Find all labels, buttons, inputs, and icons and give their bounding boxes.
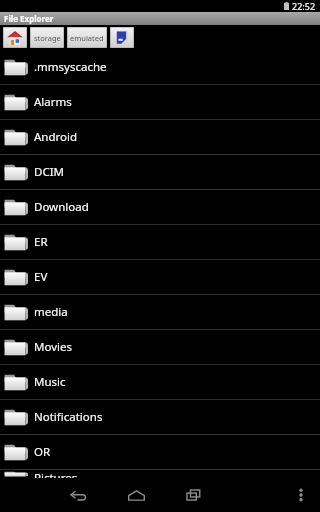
staticText: File Explorer — [4, 13, 54, 24]
staticText: Alarms — [34, 94, 72, 110]
staticText: 22:52 — [292, 0, 316, 12]
staticText: Notifications — [34, 409, 103, 425]
button[interactable]: Home — [116, 478, 156, 512]
button[interactable]: Notifications — [0, 400, 320, 434]
button[interactable]: emulated — [67, 27, 107, 48]
button[interactable]: Pictures — [0, 470, 320, 478]
button[interactable]: DCIM — [0, 155, 320, 189]
staticText: Music — [34, 374, 66, 390]
button[interactable]: Music — [0, 365, 320, 399]
button[interactable]: Back — [58, 478, 98, 512]
button[interactable]: Movies — [0, 330, 320, 364]
button[interactable]: Recents — [174, 478, 214, 512]
button[interactable]: More options — [286, 480, 316, 510]
button[interactable]: .mmsyscache — [0, 50, 320, 84]
button[interactable]: storage — [30, 27, 64, 48]
staticText: storage — [34, 33, 61, 43]
staticText: ER — [34, 234, 48, 250]
button[interactable]: Android — [0, 120, 320, 154]
button[interactable]: EV — [0, 260, 320, 294]
staticText: Android — [34, 129, 78, 145]
staticText: DCIM — [34, 164, 64, 180]
staticText: media — [34, 304, 68, 320]
staticText: .mmsyscache — [34, 59, 107, 75]
staticText: emulated — [70, 33, 104, 43]
button[interactable]: media — [0, 295, 320, 329]
staticText: EV — [34, 269, 48, 285]
button[interactable]: Download — [0, 190, 320, 224]
button[interactable]: Home — [3, 27, 27, 48]
staticText: Download — [34, 199, 89, 215]
button[interactable]: Alarms — [0, 85, 320, 119]
button[interactable]: ER — [0, 225, 320, 259]
button[interactable]: OR — [0, 435, 320, 469]
button[interactable]: Shortcut — [110, 27, 134, 48]
staticText: OR — [34, 444, 51, 460]
staticText: Pictures — [34, 470, 78, 478]
staticText: Movies — [34, 339, 72, 355]
